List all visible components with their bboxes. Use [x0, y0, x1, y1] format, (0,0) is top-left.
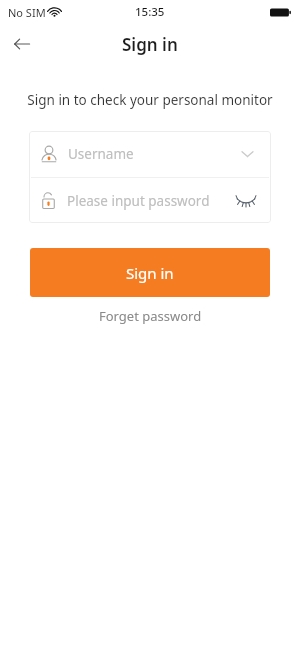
- button[interactable]: Show password: [232, 187, 260, 215]
- button[interactable]: Forget password: [89, 302, 212, 330]
- button[interactable]: Username: [29, 131, 271, 177]
- button[interactable]: Sign in: [30, 248, 270, 297]
- staticText: Username: [68, 145, 234, 163]
- staticText: Sign in: [126, 263, 174, 283]
- staticText: Forget password: [99, 307, 202, 325]
- staticText: Sign in: [122, 33, 178, 56]
- staticText: Sign in to check your personal monitor: [12, 91, 288, 109]
- staticText: Please input password: [67, 192, 232, 210]
- staticText: 15:35: [135, 4, 165, 20]
- button[interactable]: Back: [0, 24, 44, 64]
- staticText: No SIM: [8, 5, 46, 20]
- button[interactable]: Show saved accounts: [234, 141, 260, 167]
- button[interactable]: Please input password: [29, 178, 271, 223]
